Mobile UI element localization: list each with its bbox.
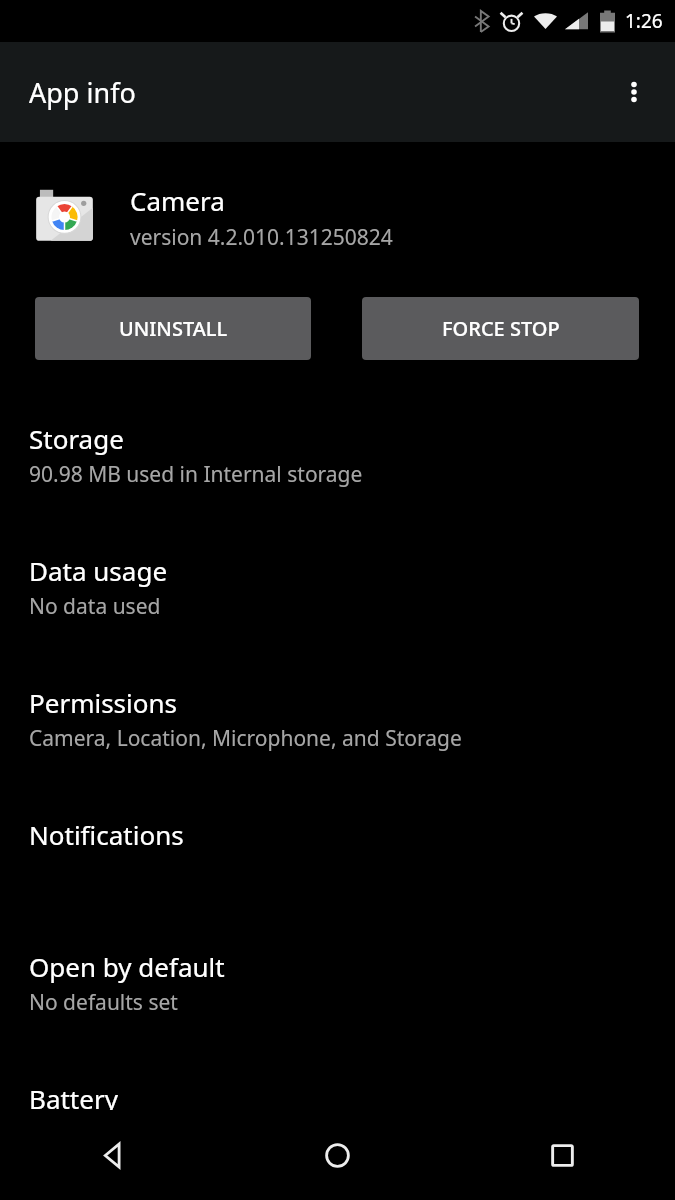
button[interactable]: Open by default xyxy=(0,945,675,1077)
staticText: Camera, Location, Microphone, and Storag… xyxy=(29,724,462,753)
button[interactable]: Camera xyxy=(0,183,675,252)
staticText: Permissions xyxy=(29,685,178,720)
button[interactable]: Home xyxy=(225,1110,450,1200)
staticText: Notifications xyxy=(29,817,184,852)
staticText: Storage xyxy=(29,421,124,456)
staticText: Camera xyxy=(130,183,225,218)
staticText: No defaults set xyxy=(29,988,178,1017)
staticText: No data used xyxy=(29,592,161,621)
staticText: Data usage xyxy=(29,553,168,588)
staticText: 1:26 xyxy=(625,8,663,34)
staticText: FORCE STOP xyxy=(442,315,560,342)
staticText: 0% use since last full charge xyxy=(29,1120,305,1149)
button[interactable]: UNINSTALL xyxy=(35,297,311,360)
staticText: 90.98 MB used in Internal storage xyxy=(29,460,363,489)
button[interactable]: More options xyxy=(607,65,661,119)
button[interactable]: Data usage xyxy=(0,549,675,681)
button[interactable]: Permissions xyxy=(0,681,675,813)
button[interactable]: Battery xyxy=(0,1077,675,1200)
staticText: App info xyxy=(29,74,136,111)
staticText: version 4.2.010.131250824 xyxy=(130,223,393,252)
button[interactable]: FORCE STOP xyxy=(362,297,639,360)
button[interactable]: Back xyxy=(0,1110,225,1200)
button[interactable]: Notifications xyxy=(0,813,675,945)
button[interactable]: Storage xyxy=(0,417,675,549)
staticText: Battery xyxy=(29,1081,118,1116)
button[interactable]: Recent apps xyxy=(450,1110,675,1200)
staticText: Open by default xyxy=(29,949,225,984)
staticText: UNINSTALL xyxy=(119,315,228,342)
